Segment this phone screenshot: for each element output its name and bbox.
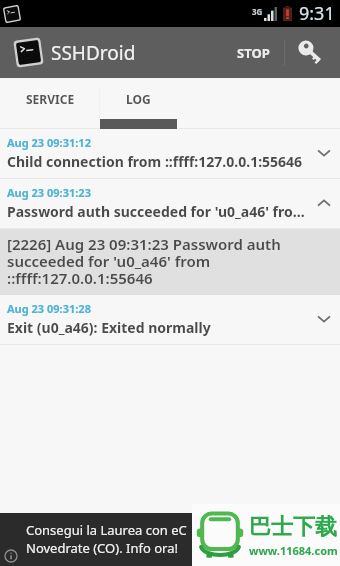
staticText: 9:31 [299,1,335,26]
button[interactable]: STOP [223,30,284,76]
staticText: Password auth succeeded for 'u0_a46' fro… [7,202,308,221]
staticText: www.11684.com [249,543,338,558]
staticText: 巴士下载 [249,513,337,541]
staticText: SSHDroid [51,40,136,66]
staticText: Aug 23 09:31:23 [7,185,91,200]
button[interactable]: LOG [100,78,177,129]
staticText: Consegui la Laurea con eC [26,521,187,539]
button[interactable]: Aug 23 09:31:23 [0,179,340,229]
button[interactable]: SERVICE [0,78,100,129]
staticText: LOG [126,91,151,107]
button[interactable]: Consegui la Laurea con eC [0,513,340,566]
staticText: 3G [252,6,263,17]
other: Expand [314,309,334,329]
button[interactable]: SSH key settings [285,29,333,77]
other: Collapse [314,193,334,213]
staticText: Child connection from ::ffff:127.0.0.1:5… [7,152,303,171]
staticText: SERVICE [26,91,75,107]
staticText: Exit (u0_a46): Exited normally [7,318,211,337]
staticText: Aug 23 09:31:28 [7,301,91,316]
staticText: STOP [237,44,270,62]
other: Expand [314,143,334,163]
staticText: Novedrate (CO). Info ora! [26,539,178,557]
staticText: Aug 23 09:31:12 [7,135,91,150]
button[interactable]: Aug 23 09:31:12 [0,129,340,179]
staticText: [2226] Aug 23 09:31:23 Password auth suc… [7,234,281,289]
button[interactable]: Aug 23 09:31:28 [0,295,340,345]
